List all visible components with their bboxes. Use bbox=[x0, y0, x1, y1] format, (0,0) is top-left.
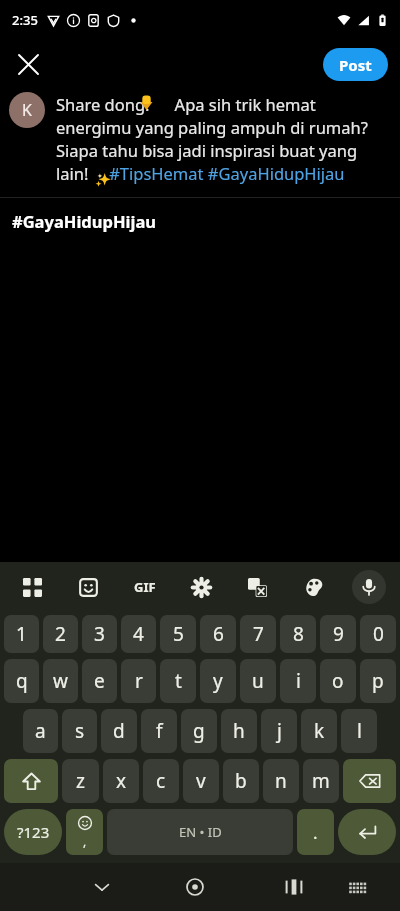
staticText: . bbox=[313, 821, 318, 844]
staticText: c bbox=[156, 768, 166, 794]
button[interactable]: p bbox=[360, 659, 396, 703]
button[interactable]: ?123 bbox=[4, 809, 62, 855]
staticText: g bbox=[193, 718, 205, 744]
staticText: t bbox=[175, 668, 182, 694]
button[interactable]: EN • ID bbox=[107, 809, 293, 855]
staticText: 5 bbox=[173, 621, 184, 647]
button[interactable]: Emoji bbox=[66, 809, 103, 855]
button[interactable]: 2 bbox=[43, 615, 78, 653]
staticText: #GayaHidupHijau bbox=[12, 210, 157, 232]
button[interactable]: Themes bbox=[296, 569, 332, 605]
button[interactable]: x bbox=[103, 759, 139, 803]
staticText: k bbox=[314, 718, 325, 744]
staticText: Post bbox=[339, 55, 372, 75]
button[interactable]: Voice input bbox=[352, 570, 386, 604]
staticText: i bbox=[296, 668, 301, 694]
staticText: 4 bbox=[133, 621, 144, 647]
button[interactable]: GIF bbox=[127, 569, 163, 605]
button[interactable]: o bbox=[320, 659, 356, 703]
button[interactable]: Close bbox=[8, 44, 48, 84]
staticText: h bbox=[233, 718, 245, 744]
staticText: l bbox=[357, 718, 362, 744]
button[interactable]: c bbox=[143, 759, 179, 803]
button[interactable]: e bbox=[82, 659, 117, 703]
button[interactable]: t bbox=[160, 659, 196, 703]
button[interactable]: k bbox=[301, 709, 337, 753]
button[interactable]: z bbox=[62, 759, 99, 803]
staticText: 0 bbox=[373, 621, 384, 647]
button[interactable]: b bbox=[223, 759, 259, 803]
staticText: 2 bbox=[55, 621, 66, 647]
staticText: z bbox=[76, 768, 85, 794]
button[interactable]: y bbox=[200, 659, 236, 703]
staticText: 6 bbox=[213, 621, 224, 647]
button[interactable]: 3 bbox=[82, 615, 117, 653]
button[interactable]: m bbox=[303, 759, 339, 803]
button[interactable]: Apps bbox=[14, 569, 50, 605]
staticText: s bbox=[75, 718, 85, 744]
button[interactable]: f bbox=[141, 709, 177, 753]
staticText: w bbox=[53, 668, 68, 694]
button[interactable]: s bbox=[62, 709, 97, 753]
staticText: e bbox=[94, 668, 105, 694]
button[interactable]: Home bbox=[163, 863, 227, 911]
button[interactable]: n bbox=[263, 759, 299, 803]
button[interactable]: Enter bbox=[338, 809, 396, 855]
staticText: 1 bbox=[16, 621, 27, 647]
button[interactable]: 9 bbox=[320, 615, 356, 653]
staticText: u bbox=[252, 668, 264, 694]
button[interactable]: r bbox=[121, 659, 156, 703]
staticText: EN • ID bbox=[179, 823, 222, 841]
button[interactable]: a bbox=[23, 709, 58, 753]
button[interactable]: Post bbox=[323, 48, 388, 81]
button[interactable]: Shift bbox=[4, 759, 58, 803]
button[interactable]: . bbox=[297, 809, 334, 855]
button[interactable]: i bbox=[280, 659, 316, 703]
button[interactable]: 5 bbox=[160, 615, 196, 653]
staticText: p bbox=[372, 668, 384, 694]
button[interactable]: g bbox=[181, 709, 217, 753]
button[interactable]: h bbox=[221, 709, 257, 753]
button[interactable]: Hide keyboard bbox=[70, 863, 134, 911]
staticText: GIF bbox=[134, 578, 156, 596]
button[interactable]: 4 bbox=[121, 615, 156, 653]
staticText: 3 bbox=[94, 621, 105, 647]
staticText: j bbox=[277, 718, 282, 744]
button[interactable]: j bbox=[261, 709, 297, 753]
staticText: x bbox=[116, 768, 127, 794]
button[interactable]: v bbox=[183, 759, 219, 803]
button[interactable]: K bbox=[9, 92, 45, 128]
staticText: y bbox=[213, 668, 223, 694]
button[interactable]: q bbox=[4, 659, 39, 703]
staticText: a bbox=[35, 718, 46, 744]
button[interactable]: Switch keyboard bbox=[326, 863, 390, 911]
staticText: , bbox=[83, 833, 87, 849]
button[interactable]: 7 bbox=[240, 615, 276, 653]
button[interactable]: Recents bbox=[262, 863, 326, 911]
button[interactable]: 8 bbox=[280, 615, 316, 653]
button[interactable]: 0 bbox=[360, 615, 396, 653]
staticText: f bbox=[156, 718, 163, 744]
staticText: ?123 bbox=[17, 822, 50, 842]
button[interactable]: Settings bbox=[183, 569, 219, 605]
button[interactable]: d bbox=[101, 709, 137, 753]
button[interactable]: w bbox=[43, 659, 78, 703]
staticText: 7 bbox=[253, 621, 264, 647]
staticText: 2:35 bbox=[12, 11, 38, 29]
button[interactable]: Translate bbox=[239, 569, 275, 605]
staticText: r bbox=[135, 668, 143, 694]
button[interactable]: 6 bbox=[200, 615, 236, 653]
staticText: q bbox=[16, 668, 28, 694]
button[interactable]: u bbox=[240, 659, 276, 703]
staticText: Share dong! Apa sih trik hemat energimu … bbox=[56, 93, 388, 185]
staticText: o bbox=[332, 668, 344, 694]
staticText: d bbox=[113, 718, 125, 744]
staticText: n bbox=[275, 768, 287, 794]
staticText: 8 bbox=[293, 621, 304, 647]
button[interactable]: l bbox=[341, 709, 377, 753]
button[interactable]: Stickers bbox=[70, 569, 106, 605]
button[interactable]: 1 bbox=[4, 615, 39, 653]
button[interactable]: Backspace bbox=[343, 759, 396, 803]
staticText: v bbox=[196, 768, 206, 794]
staticText: K bbox=[22, 99, 32, 121]
